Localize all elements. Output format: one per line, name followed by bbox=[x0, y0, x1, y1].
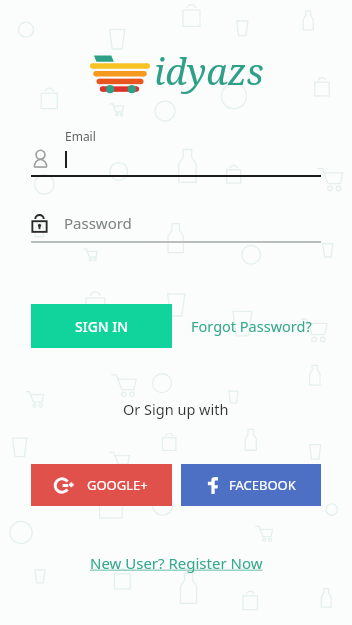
staticText: idyazs bbox=[154, 45, 264, 95]
button[interactable]: Facebook bbox=[181, 464, 321, 506]
staticText: Email bbox=[65, 128, 96, 144]
button[interactable]: Forgot Password? bbox=[191, 316, 312, 336]
button[interactable]: Password bbox=[31, 210, 321, 243]
staticText: SIGN IN bbox=[75, 317, 129, 336]
staticText: Forgot Password? bbox=[191, 316, 312, 336]
staticText: GOOGLE+ bbox=[87, 476, 148, 494]
button[interactable]: SIGN IN bbox=[31, 304, 172, 348]
button[interactable]: New User? Register Now bbox=[90, 553, 263, 573]
other: Google plus bbox=[56, 478, 74, 493]
staticText: New User? Register Now bbox=[90, 553, 263, 573]
staticText: Or Sign up with bbox=[123, 399, 229, 419]
other: Facebook bbox=[207, 477, 218, 494]
staticText: FACEBOOK bbox=[229, 476, 296, 494]
button[interactable]: Google plus bbox=[31, 464, 172, 506]
button[interactable]: Email bbox=[31, 128, 321, 177]
staticText: Password bbox=[64, 213, 132, 233]
